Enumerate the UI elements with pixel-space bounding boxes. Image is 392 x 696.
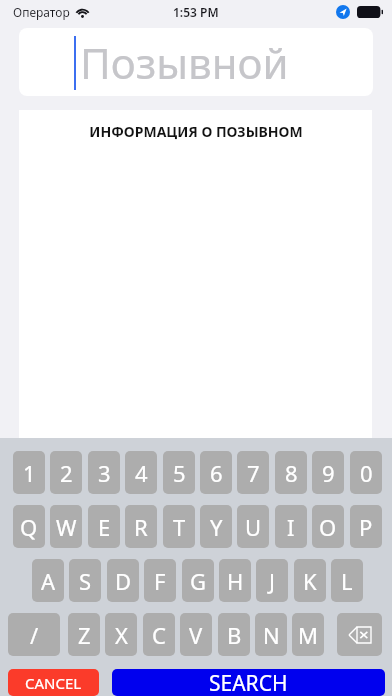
staticText: E: [98, 512, 111, 542]
staticText: R: [134, 512, 148, 542]
button[interactable]: I: [275, 505, 307, 548]
staticText: 6: [210, 458, 223, 488]
button[interactable]: R: [125, 505, 157, 548]
staticText: B: [227, 620, 242, 650]
button[interactable]: F: [144, 559, 176, 602]
staticText: 8: [285, 458, 298, 488]
button[interactable]: 5: [163, 451, 195, 494]
staticText: D: [115, 566, 132, 596]
staticText: N: [263, 620, 280, 650]
button[interactable]: 9: [312, 451, 344, 494]
button[interactable]: 7: [237, 451, 269, 494]
button[interactable]: N: [255, 613, 287, 656]
staticText: 7: [247, 458, 260, 488]
staticText: 5: [173, 458, 186, 488]
staticText: W: [56, 512, 77, 542]
button[interactable]: J: [256, 559, 288, 602]
button[interactable]: S: [69, 559, 101, 602]
button[interactable]: E: [88, 505, 120, 548]
staticText: ИНФОРМАЦИЯ О ПОЗЫВНОМ: [89, 122, 303, 141]
button[interactable]: M: [292, 613, 324, 656]
button[interactable]: Q: [13, 505, 45, 548]
button[interactable]: X: [105, 613, 137, 656]
staticText: T: [173, 512, 186, 542]
staticText: Оператор: [13, 4, 70, 20]
staticText: 2: [60, 458, 73, 488]
staticText: A: [41, 566, 56, 596]
staticText: Q: [20, 512, 38, 542]
button[interactable]: G: [182, 559, 214, 602]
staticText: 3: [98, 458, 111, 488]
button[interactable]: P: [350, 505, 382, 548]
staticText: 4: [135, 458, 148, 488]
staticText: C: [152, 620, 166, 650]
staticText: SEARCH: [209, 669, 288, 696]
button[interactable]: U: [237, 505, 269, 548]
button[interactable]: 3: [88, 451, 120, 494]
staticText: P: [359, 512, 373, 542]
staticText: L: [341, 566, 353, 596]
button[interactable]: 8: [275, 451, 307, 494]
staticText: 9: [322, 458, 335, 488]
button[interactable]: /: [8, 613, 60, 656]
button[interactable]: 1: [13, 451, 45, 494]
button[interactable]: C: [143, 613, 175, 656]
button[interactable]: CANCEL: [8, 669, 99, 696]
staticText: X: [115, 620, 128, 650]
staticText: U: [245, 512, 262, 542]
button[interactable]: Y: [200, 505, 232, 548]
staticText: V: [189, 620, 203, 650]
staticText: Позывной: [80, 34, 289, 91]
staticText: G: [190, 566, 207, 596]
button[interactable]: H: [219, 559, 251, 602]
button[interactable]: A: [32, 559, 64, 602]
staticText: Y: [210, 512, 223, 542]
button[interactable]: O: [312, 505, 344, 548]
button[interactable]: Z: [68, 613, 100, 656]
staticText: 0: [360, 458, 373, 488]
button[interactable]: L: [331, 559, 363, 602]
staticText: I: [287, 512, 295, 542]
staticText: S: [79, 566, 92, 596]
button[interactable]: W: [50, 505, 82, 548]
staticText: CANCEL: [25, 673, 82, 693]
button[interactable]: 4: [125, 451, 157, 494]
staticText: J: [269, 566, 276, 596]
button[interactable]: Позывной: [19, 28, 373, 96]
staticText: O: [319, 512, 337, 542]
staticText: F: [154, 566, 166, 596]
staticText: 1: [23, 458, 36, 488]
button[interactable]: SEARCH: [112, 669, 385, 696]
staticText: M: [298, 620, 318, 650]
button[interactable]: Backspace: [337, 613, 382, 656]
button[interactable]: D: [107, 559, 139, 602]
staticText: H: [227, 566, 244, 596]
button[interactable]: T: [163, 505, 195, 548]
button[interactable]: 2: [50, 451, 82, 494]
button[interactable]: B: [218, 613, 250, 656]
button[interactable]: 0: [350, 451, 382, 494]
staticText: K: [303, 566, 317, 596]
button[interactable]: 6: [200, 451, 232, 494]
button[interactable]: V: [180, 613, 212, 656]
staticText: /: [30, 620, 39, 650]
button[interactable]: K: [294, 559, 326, 602]
staticText: Z: [78, 620, 91, 650]
staticText: 1:53 PM: [173, 4, 219, 20]
